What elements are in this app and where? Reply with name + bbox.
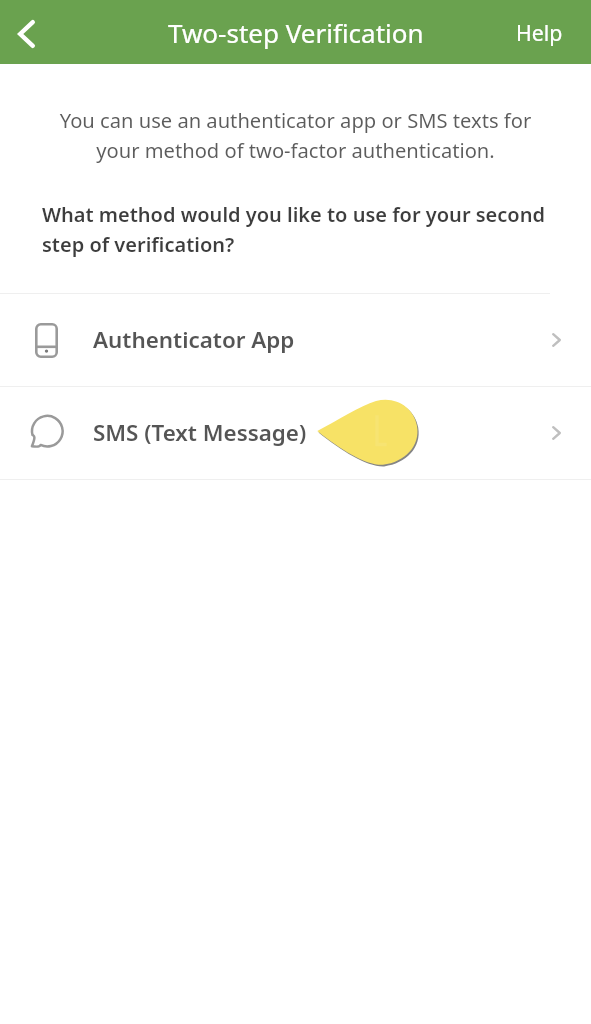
- button[interactable]: Back: [0, 4, 56, 60]
- staticText: Two-step Verification: [168, 15, 424, 50]
- button[interactable]: SMS (Text Message): [0, 387, 591, 479]
- staticText: Authenticator App: [93, 324, 295, 355]
- staticText: What method would you like to use for yo…: [42, 201, 561, 258]
- staticText: SMS (Text Message): [93, 417, 307, 448]
- button[interactable]: Authenticator App: [0, 294, 591, 386]
- staticText: You can use an authenticator app or SMS …: [42, 106, 549, 164]
- staticText: Help: [516, 18, 563, 47]
- button[interactable]: Help: [496, 4, 591, 61]
